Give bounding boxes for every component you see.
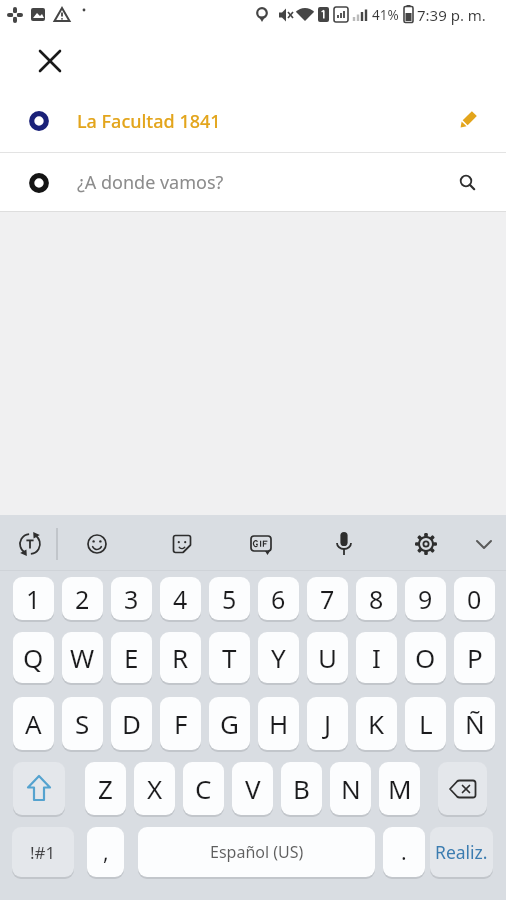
button[interactable]: . (383, 827, 425, 877)
button[interactable]: Y (258, 632, 299, 683)
staticText: 0 (467, 582, 482, 616)
button[interactable] (241, 523, 281, 563)
staticText: J (324, 706, 332, 741)
button[interactable]: Realiz. (430, 827, 493, 877)
button[interactable]: Q (13, 632, 54, 683)
staticText: E (124, 640, 139, 675)
button[interactable]: 2 (62, 577, 103, 620)
staticText: 8 (369, 582, 384, 616)
staticText: . (401, 838, 407, 867)
staticText: I (372, 640, 381, 675)
staticText: M (388, 771, 412, 806)
button[interactable]: 6 (258, 577, 299, 620)
staticText: W (70, 640, 95, 675)
button[interactable]: 5 (209, 577, 250, 620)
button[interactable]: M (379, 762, 420, 815)
button[interactable]: 9 (405, 577, 446, 620)
button[interactable] (438, 762, 487, 815)
staticText: Y (271, 640, 286, 675)
staticText: 1 (26, 582, 41, 616)
button[interactable]: H (258, 697, 299, 750)
staticText: 4 (173, 582, 188, 616)
button[interactable]: G (209, 697, 250, 750)
staticText: R (172, 640, 189, 675)
staticText: F (174, 706, 188, 741)
button[interactable] (464, 523, 504, 563)
button[interactable] (324, 523, 364, 563)
button[interactable]: , (87, 827, 124, 877)
button[interactable]: W (62, 632, 103, 683)
button[interactable]: R (160, 632, 201, 683)
button[interactable]: K (356, 697, 397, 750)
button[interactable]: C (183, 762, 224, 815)
staticText: L (419, 706, 433, 741)
staticText: V (245, 771, 261, 806)
button[interactable]: E (111, 632, 152, 683)
staticText: D (122, 706, 141, 741)
staticText: T (222, 640, 237, 675)
button[interactable] (406, 523, 446, 563)
button[interactable]: Ñ (454, 697, 495, 750)
staticText: N (341, 771, 361, 806)
button[interactable]: F (160, 697, 201, 750)
button[interactable]: X (134, 762, 175, 815)
staticText: !#1 (30, 841, 56, 864)
button[interactable]: 4 (160, 577, 201, 620)
button[interactable]: 1 (13, 577, 54, 620)
staticText: G (220, 706, 239, 741)
staticText: 9 (418, 582, 433, 616)
staticText: 7 (320, 582, 335, 616)
button[interactable]: J (307, 697, 348, 750)
staticText: Ñ (465, 706, 485, 741)
staticText: A (25, 706, 42, 741)
staticText: Q (23, 640, 44, 675)
button[interactable]: Español (US) (138, 827, 375, 877)
staticText: U (318, 640, 338, 675)
staticText: P (467, 640, 483, 675)
button[interactable] (10, 523, 50, 563)
button[interactable]: 7 (307, 577, 348, 620)
button[interactable]: P (454, 632, 495, 683)
staticText: 7:39 p. m. (417, 5, 486, 25)
staticText: X (147, 771, 163, 806)
button[interactable]: A (13, 697, 54, 750)
staticText: K (368, 706, 385, 741)
button[interactable]: La Facultad 1841 (0, 90, 506, 152)
button[interactable]: U (307, 632, 348, 683)
button[interactable]: N (330, 762, 371, 815)
staticText: ¿A donde vamos? (77, 170, 224, 195)
button[interactable] (13, 762, 65, 815)
button[interactable]: S (62, 697, 103, 750)
button[interactable] (162, 523, 202, 563)
staticText: H (269, 706, 289, 741)
button[interactable]: I (356, 632, 397, 683)
button[interactable]: L (405, 697, 446, 750)
button[interactable]: ¿A donde vamos? (0, 153, 506, 211)
staticText: 41% (372, 6, 399, 24)
staticText: , (103, 838, 109, 867)
button[interactable]: O (405, 632, 446, 683)
staticText: Realiz. (435, 840, 488, 864)
staticText: O (415, 640, 436, 675)
staticText: 2 (75, 582, 90, 616)
button[interactable]: !#1 (12, 827, 74, 877)
staticText: Español (US) (210, 841, 304, 863)
button[interactable]: V (232, 762, 273, 815)
staticText: S (75, 706, 90, 741)
button[interactable] (77, 523, 117, 563)
staticText: 3 (124, 582, 139, 616)
button[interactable]: Z (85, 762, 126, 815)
button[interactable] (36, 47, 64, 75)
staticText: 6 (271, 582, 286, 616)
staticText: C (195, 771, 212, 806)
button[interactable]: 8 (356, 577, 397, 620)
staticText: 5 (222, 582, 237, 616)
button[interactable]: 0 (454, 577, 495, 620)
staticText: B (293, 771, 310, 806)
staticText: Z (98, 771, 113, 806)
button[interactable]: T (209, 632, 250, 683)
button[interactable]: D (111, 697, 152, 750)
button[interactable]: 3 (111, 577, 152, 620)
staticText: La Facultad 1841 (77, 109, 221, 134)
button[interactable]: B (281, 762, 322, 815)
